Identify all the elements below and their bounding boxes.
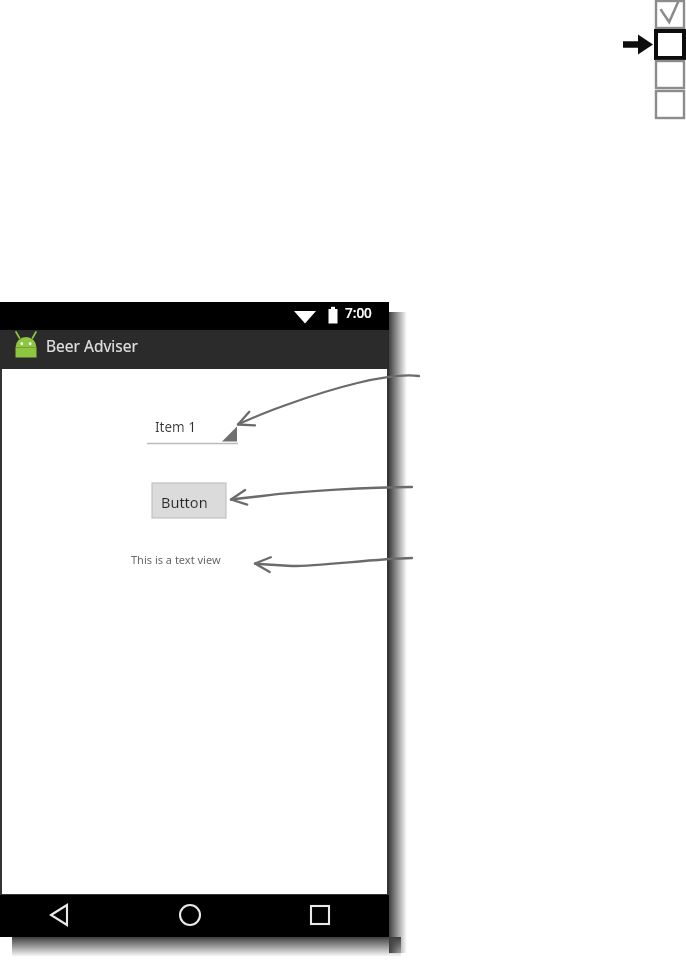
staticText: 7:00 — [345, 304, 372, 322]
button[interactable]: Chapter checklist — [654, 0, 686, 120]
button[interactable]: Back — [38, 899, 82, 932]
button[interactable]: Item 1 — [147, 412, 238, 445]
button[interactable]: Recent apps — [298, 899, 342, 932]
staticText: This is a text view — [131, 552, 221, 567]
button[interactable]: Button — [152, 483, 226, 518]
staticText: Beer Adviser — [46, 335, 138, 356]
staticText: Button — [161, 492, 208, 512]
staticText: Item 1 — [155, 418, 196, 436]
button[interactable]: Home — [168, 899, 212, 932]
